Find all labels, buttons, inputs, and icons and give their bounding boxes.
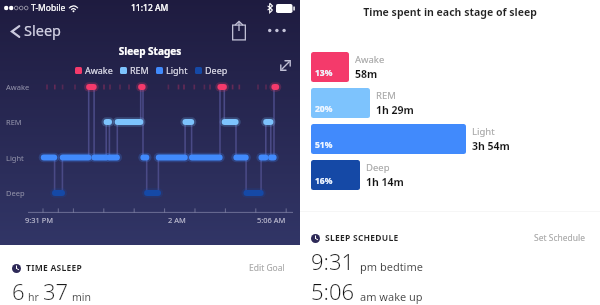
staticText: Awake: [6, 82, 30, 92]
staticText: Time spent in each stage of sleep: [300, 5, 600, 19]
button[interactable]: Expand chart: [277, 57, 294, 74]
staticText: 6: [12, 276, 25, 305]
staticText: 5:06: [311, 276, 355, 305]
staticText: 16%: [315, 175, 333, 187]
button[interactable]: Set Schedule: [531, 229, 589, 247]
staticText: Deep: [366, 161, 390, 174]
staticText: 1h 29m: [376, 103, 414, 117]
staticText: Deep: [6, 188, 25, 198]
staticText: min: [72, 290, 92, 304]
button[interactable]: Sleep: [0, 21, 67, 41]
staticText: am wake up: [360, 289, 423, 304]
staticText: Deep: [205, 64, 228, 76]
button[interactable]: 20%: [300, 88, 600, 118]
staticText: pm bedtime: [360, 259, 423, 274]
button[interactable]: 51%: [300, 124, 600, 154]
staticText: Light: [472, 125, 495, 138]
staticText: REM: [6, 117, 22, 127]
staticText: 9:31: [311, 246, 355, 276]
staticText: 51%: [315, 139, 333, 151]
staticText: 58m: [355, 67, 378, 81]
staticText: TIME ASLEEP: [26, 262, 83, 274]
staticText: REM: [376, 89, 396, 102]
button[interactable]: More options: [264, 24, 289, 37]
button[interactable]: 13%: [300, 52, 600, 82]
staticText: 13%: [315, 67, 333, 79]
staticText: Awake: [355, 53, 385, 66]
staticText: Edit Goal: [249, 262, 285, 274]
staticText: Awake: [85, 64, 113, 76]
staticText: REM: [130, 64, 149, 76]
staticText: 20%: [315, 103, 333, 115]
staticText: 9:31 PM: [25, 215, 54, 225]
button[interactable]: 16%: [300, 160, 600, 190]
staticText: SLEEP SCHEDULE: [325, 232, 399, 244]
staticText: 1h 14m: [366, 175, 404, 189]
staticText: 2 AM: [168, 215, 186, 225]
staticText: Light: [6, 153, 24, 163]
staticText: T-Mobile: [31, 2, 66, 14]
staticText: hr: [28, 290, 39, 304]
staticText: Sleep: [24, 20, 61, 40]
button[interactable]: Share: [228, 17, 250, 44]
staticText: 37: [43, 276, 69, 305]
staticText: Light: [166, 64, 188, 76]
staticText: Set Schedule: [534, 232, 586, 244]
staticText: 3h 54m: [472, 139, 510, 153]
button[interactable]: Edit Goal: [246, 259, 288, 277]
staticText: 5:06 AM: [257, 215, 286, 225]
staticText: Sleep Stages: [0, 44, 300, 58]
staticText: 11:12 AM: [131, 2, 169, 14]
